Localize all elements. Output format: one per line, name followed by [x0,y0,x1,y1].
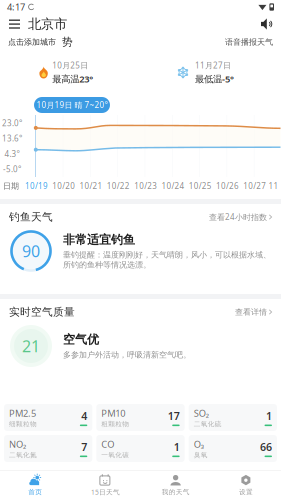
staticText: 最高温23° [52,73,93,85]
staticText: 二氧化氮 [9,451,37,459]
staticText: 日期 [3,181,19,191]
staticText: NO₂ [9,438,26,450]
staticText: 粗颗粒物 [101,420,129,428]
staticText: 90 [22,240,40,262]
staticText: 二氧化硫 [194,420,222,428]
staticText: 15日天气 [91,488,120,496]
button[interactable]: 设置 [211,471,281,500]
staticText: 17 [168,409,180,423]
staticText: 北京市 [28,16,67,32]
staticText: 实时空气质量 [9,305,75,318]
staticText: 4:17 [7,1,25,13]
staticText: 10/24 [161,181,184,191]
staticText: 7 [81,440,87,454]
staticText: 1 [266,409,272,423]
staticText: CO [101,438,114,450]
staticText: 4.3° [4,148,19,159]
staticText: 最低温-5° [195,73,234,85]
button[interactable]: 我的天气 [140,471,211,500]
staticText: PM10 [101,407,125,419]
button[interactable]: 菜单 [7,15,22,33]
staticText: 10/25 [189,181,212,191]
staticText: 非常适宜钓鱼 [63,232,135,247]
staticText: PM2.5 [9,407,36,419]
staticText: SO₂ [194,407,209,419]
staticText: 4 [81,409,87,423]
staticText: 66 [260,440,272,454]
staticText: 10/19 [25,181,48,191]
staticText: 10/27 [243,181,266,191]
button[interactable]: 查看24小时指数 [209,208,272,226]
staticText: 多参加户外活动，呼吸清新空气吧。 [63,350,191,360]
staticText: 钓鱼天气 [9,210,53,223]
button[interactable]: 首页 [0,471,70,500]
staticText: 11月27日 [195,60,231,71]
staticText: 查看详情 [235,307,267,317]
staticText: 10月25日 [52,60,88,71]
staticText: 10/20 [52,181,75,191]
button[interactable]: 语音播报天气 [222,35,276,49]
staticText: 13.6° [2,133,22,144]
staticText: 设置 [239,488,253,496]
staticText: O₃ [194,438,204,450]
staticText: 势 [62,35,73,48]
staticText: 语音播报天气 [225,37,273,47]
staticText: 查看24小时指数 [209,212,267,222]
staticText: 10月19日 晴 7~20° [36,100,107,110]
staticText: 一氧化碳 [101,451,129,459]
staticText: -5.0° [3,164,21,174]
staticText: 11 [268,181,278,191]
staticText: 首页 [28,488,42,496]
staticText: 点击添加城市 [8,37,56,47]
staticText: 10/23 [134,181,157,191]
button[interactable]: 语音播报 [259,15,274,33]
staticText: 垂钓提醒：温度刚刚好，天气晴朗，风小，可以根据水域、所钓的鱼种等情况选漂。 [63,250,271,270]
staticText: 我的天气 [162,488,190,496]
staticText: 23.0° [2,118,22,128]
staticText: 10/22 [107,181,130,191]
staticText: 臭氧 [194,451,208,459]
staticText: 10/21 [80,181,103,191]
button[interactable]: 查看详情 [235,303,272,321]
staticText: 21 [22,335,40,357]
staticText: 1 [174,440,180,454]
button[interactable]: 点击添加城市 [5,35,59,49]
staticText: 空气优 [63,332,99,347]
button[interactable]: 15日天气 [70,471,140,500]
staticText: 细颗粒物 [9,420,37,428]
staticText: 10/26 [216,181,239,191]
